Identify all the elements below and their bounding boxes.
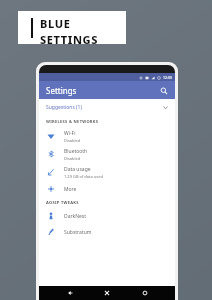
button[interactable]: Substratum — [39, 224, 175, 240]
staticText: Suggestions (1) — [46, 104, 82, 111]
staticText: DarkNest — [64, 213, 87, 220]
staticText: Disabled — [64, 156, 81, 161]
button[interactable]: Bluetooth — [39, 145, 175, 163]
staticText: More — [64, 186, 77, 193]
staticText: Wi-Fi — [64, 130, 76, 137]
button[interactable]: Suggestions (1) — [39, 99, 175, 116]
staticText: 1.29 GB of data used — [64, 174, 103, 179]
staticText: Disabled — [64, 138, 81, 143]
button[interactable]: DarkNest — [39, 208, 175, 224]
staticText: Substratum — [64, 229, 92, 236]
button[interactable]: Back — [63, 286, 77, 300]
staticText: SETTINGS — [40, 32, 98, 47]
staticText: Data usage — [64, 166, 91, 173]
staticText: Settings — [46, 85, 77, 96]
button[interactable]: Wi-Fi — [39, 127, 175, 145]
staticText: AOSIP TWEAKS — [46, 200, 79, 205]
button[interactable]: Recent apps — [138, 286, 152, 300]
button[interactable]: Data usage — [39, 163, 175, 181]
button[interactable]: Home — [100, 286, 114, 300]
button[interactable]: Search — [158, 85, 169, 96]
staticText: 12:00 — [163, 75, 172, 80]
staticText: WIRELESS & NETWORKS — [46, 119, 99, 124]
staticText: BLUE — [40, 16, 71, 31]
staticText: Bluetooth — [64, 148, 88, 155]
button[interactable]: Settings — [39, 81, 175, 99]
button[interactable]: More — [39, 181, 175, 197]
